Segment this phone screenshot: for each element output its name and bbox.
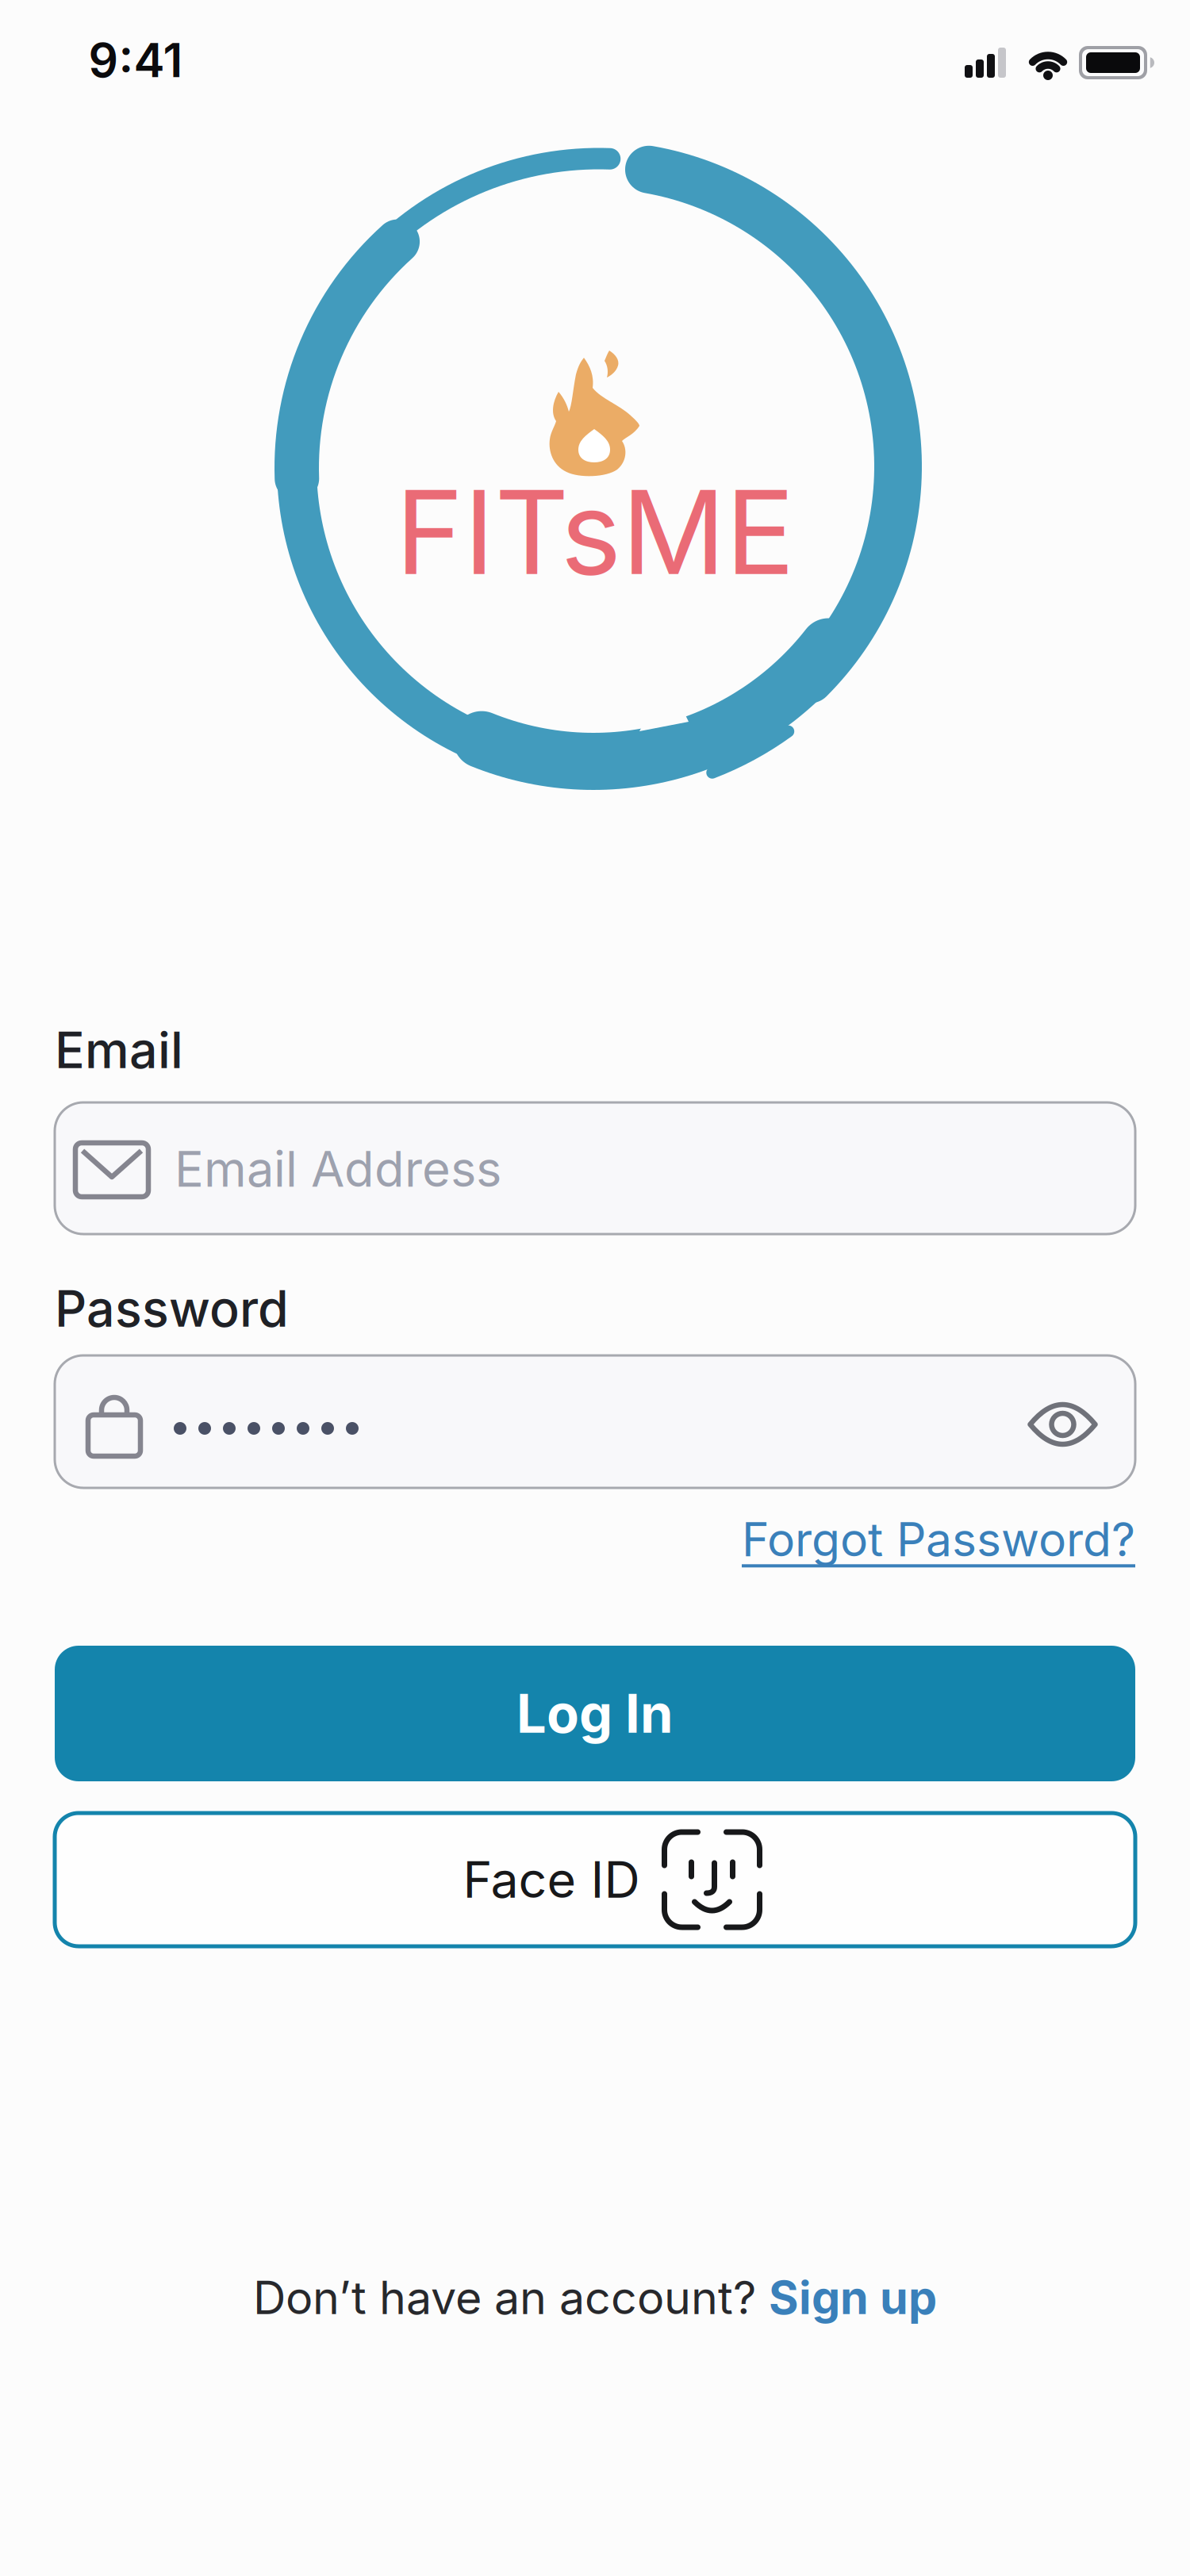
button[interactable]: Sign up	[769, 2271, 937, 2324]
staticText: Log In	[516, 1682, 674, 1745]
button[interactable]: Log In	[55, 1646, 1135, 1781]
button[interactable]: Email Address	[55, 1102, 1135, 1234]
staticText: Don’t have an account?	[253, 2271, 756, 2324]
staticText: Email Address	[175, 1140, 501, 1198]
staticText: Password	[55, 1279, 289, 1338]
staticText: Face ID	[463, 1850, 640, 1909]
button[interactable]: Forgot Password?	[742, 1512, 1135, 1567]
staticText: 9:41	[88, 33, 183, 88]
staticText: FITsME	[395, 464, 795, 600]
button[interactable]: Password	[55, 1355, 1135, 1488]
staticText: Email	[55, 1021, 183, 1079]
staticText: Forgot Password?	[742, 1512, 1135, 1567]
staticText: Sign up	[769, 2271, 937, 2324]
button[interactable]: Show password	[1027, 1401, 1098, 1448]
button[interactable]: Face ID	[55, 1813, 1135, 1946]
